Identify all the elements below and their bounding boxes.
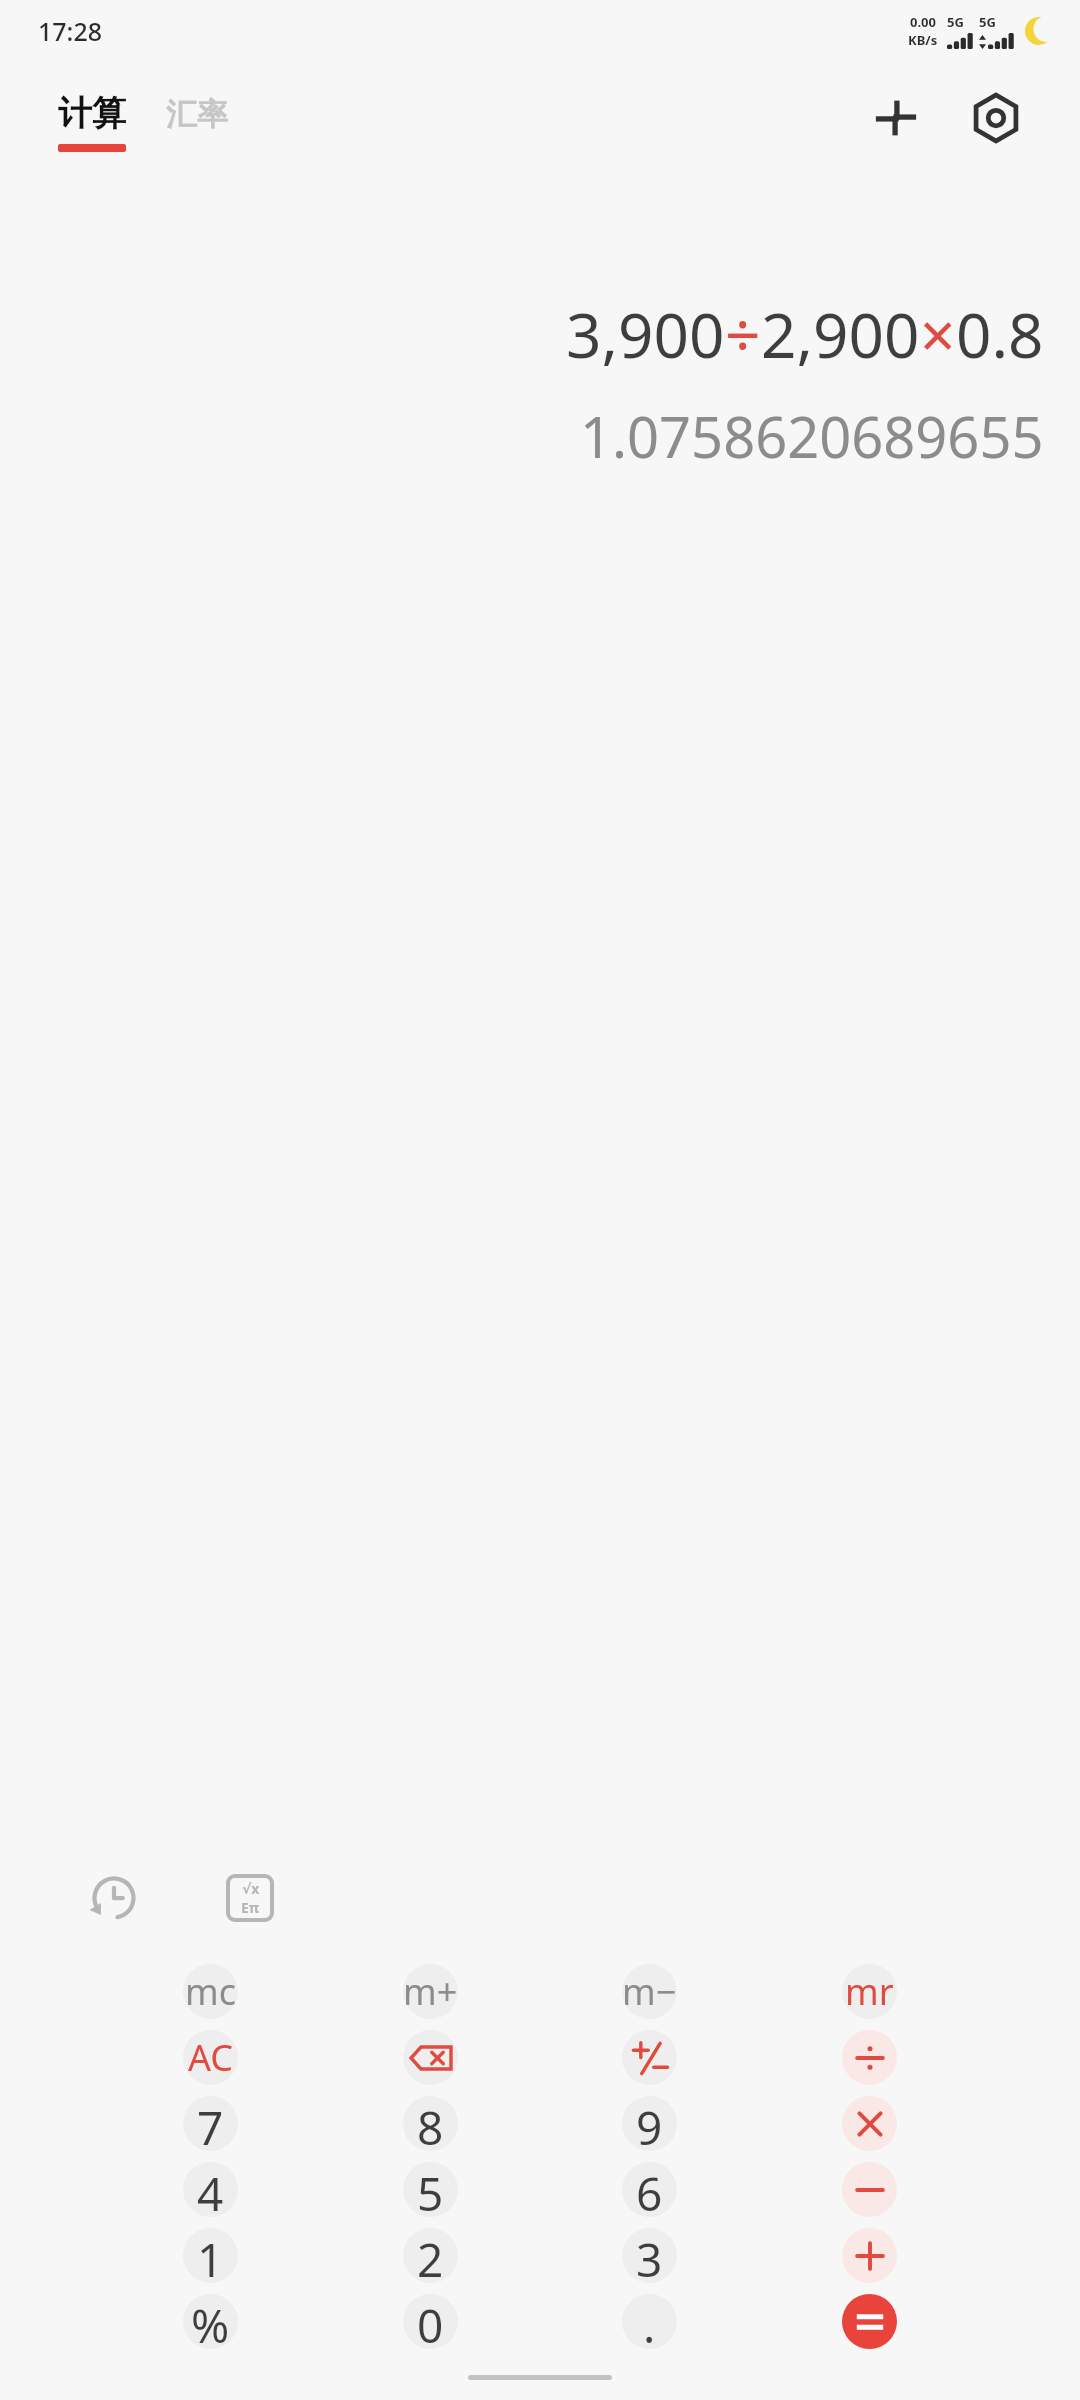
staticText: 1 <box>197 2228 224 2283</box>
button[interactable]: 4 <box>183 2162 238 2217</box>
button[interactable]: Rotate screen <box>862 84 930 152</box>
staticText: 计算 <box>58 92 126 135</box>
button[interactable]: AC <box>183 2030 238 2085</box>
staticText: 3,900 <box>566 292 725 376</box>
button[interactable]: 0 <box>403 2294 458 2349</box>
button[interactable] <box>842 2228 897 2283</box>
button[interactable]: History <box>78 1862 150 1934</box>
staticText: KB/s <box>908 31 938 49</box>
staticText: mc <box>185 1967 236 2016</box>
staticText: 2 <box>417 2228 444 2283</box>
button[interactable] <box>842 2162 897 2217</box>
staticText: % <box>191 2294 230 2349</box>
staticText: Eπ <box>241 1898 260 1917</box>
staticText: 0 <box>417 2294 444 2349</box>
button[interactable] <box>842 2294 897 2349</box>
staticText: 5G <box>947 13 964 31</box>
button[interactable]: m− <box>622 1964 677 2019</box>
button[interactable]: Scientific functions <box>214 1862 286 1934</box>
button[interactable]: mr <box>842 1964 897 2019</box>
button[interactable]: Backspace <box>403 2030 458 2085</box>
button[interactable]: Toggle sign <box>622 2030 677 2085</box>
staticText: 5 <box>417 2162 444 2217</box>
button[interactable]: 7 <box>183 2096 238 2151</box>
staticText: 汇率 <box>166 95 228 134</box>
staticText: mr <box>845 1967 894 2016</box>
staticText: . <box>643 2294 656 2349</box>
staticText: × <box>920 292 956 376</box>
staticText: m+ <box>403 1967 458 2016</box>
button[interactable]: 8 <box>403 2096 458 2151</box>
staticText: 9 <box>636 2096 663 2151</box>
staticText: √x <box>242 1879 260 1898</box>
button[interactable] <box>842 2096 897 2151</box>
staticText: 4 <box>197 2162 224 2217</box>
staticText: 0.00 <box>910 13 936 31</box>
button[interactable]: 1 <box>183 2228 238 2283</box>
staticText: 7 <box>197 2096 224 2151</box>
button[interactable]: 9 <box>622 2096 677 2151</box>
staticText: 1.0758620689655 <box>580 398 1044 474</box>
button[interactable]: Settings <box>962 84 1030 152</box>
staticText: 6 <box>636 2162 663 2217</box>
staticText: 2,900 <box>761 292 920 376</box>
button[interactable]: 汇率 <box>166 95 228 150</box>
staticText: AC <box>188 2033 234 2082</box>
staticText: ÷ <box>725 292 761 376</box>
button[interactable]: 6 <box>622 2162 677 2217</box>
staticText: 17:28 <box>38 14 103 48</box>
button[interactable]: m+ <box>403 1964 458 2019</box>
staticText: 0.8 <box>956 292 1044 376</box>
button[interactable]: . <box>622 2294 677 2349</box>
button[interactable]: mc <box>183 1964 238 2019</box>
button[interactable]: 5 <box>403 2162 458 2217</box>
staticText: 5G <box>979 13 996 31</box>
button[interactable]: 2 <box>403 2228 458 2283</box>
staticText: 3 <box>636 2228 663 2283</box>
staticText: m− <box>622 1967 677 2016</box>
button[interactable]: % <box>183 2294 238 2349</box>
staticText: 8 <box>417 2096 444 2151</box>
button[interactable]: 3 <box>622 2228 677 2283</box>
button[interactable] <box>842 2030 897 2085</box>
button[interactable]: 计算 <box>58 92 126 152</box>
